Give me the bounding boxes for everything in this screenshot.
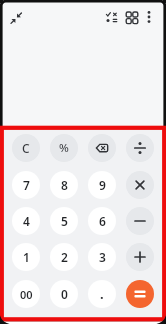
button[interactable] — [126, 171, 154, 199]
staticText: 4 — [23, 213, 30, 229]
staticText: . — [100, 285, 104, 303]
button[interactable] — [123, 8, 141, 26]
button[interactable] — [126, 207, 154, 235]
staticText: 3 — [99, 249, 106, 265]
staticText: 7 — [23, 177, 30, 193]
staticText: C — [22, 140, 30, 156]
button[interactable] — [126, 280, 154, 308]
button[interactable] — [126, 134, 154, 162]
staticText: 9 — [99, 177, 106, 193]
staticText: 6 — [99, 213, 106, 229]
staticText: 00 — [20, 287, 33, 302]
staticText: 5 — [61, 213, 68, 229]
button[interactable]: 4 — [12, 207, 40, 235]
staticText: 0 — [61, 286, 68, 302]
button[interactable]: 1 — [12, 243, 40, 271]
button[interactable] — [126, 243, 154, 271]
staticText: % — [59, 140, 69, 156]
button[interactable] — [141, 8, 157, 24]
staticText: 2 — [61, 249, 68, 265]
button[interactable]: 8 — [50, 171, 78, 199]
button[interactable] — [103, 8, 121, 26]
button[interactable]: 9 — [88, 171, 116, 199]
button[interactable]: 5 — [50, 207, 78, 235]
button[interactable] — [88, 134, 116, 162]
button[interactable]: 2 — [50, 243, 78, 271]
button[interactable]: 3 — [88, 243, 116, 271]
button[interactable]: . — [88, 280, 116, 308]
button[interactable]: % — [50, 134, 78, 162]
button[interactable]: 6 — [88, 207, 116, 235]
staticText: 1 — [23, 249, 30, 265]
staticText: 8 — [61, 177, 68, 193]
button[interactable] — [6, 8, 26, 28]
button[interactable]: 0 — [50, 280, 78, 308]
button[interactable]: 00 — [12, 280, 40, 308]
button[interactable]: 7 — [12, 171, 40, 199]
button[interactable]: C — [12, 134, 40, 162]
